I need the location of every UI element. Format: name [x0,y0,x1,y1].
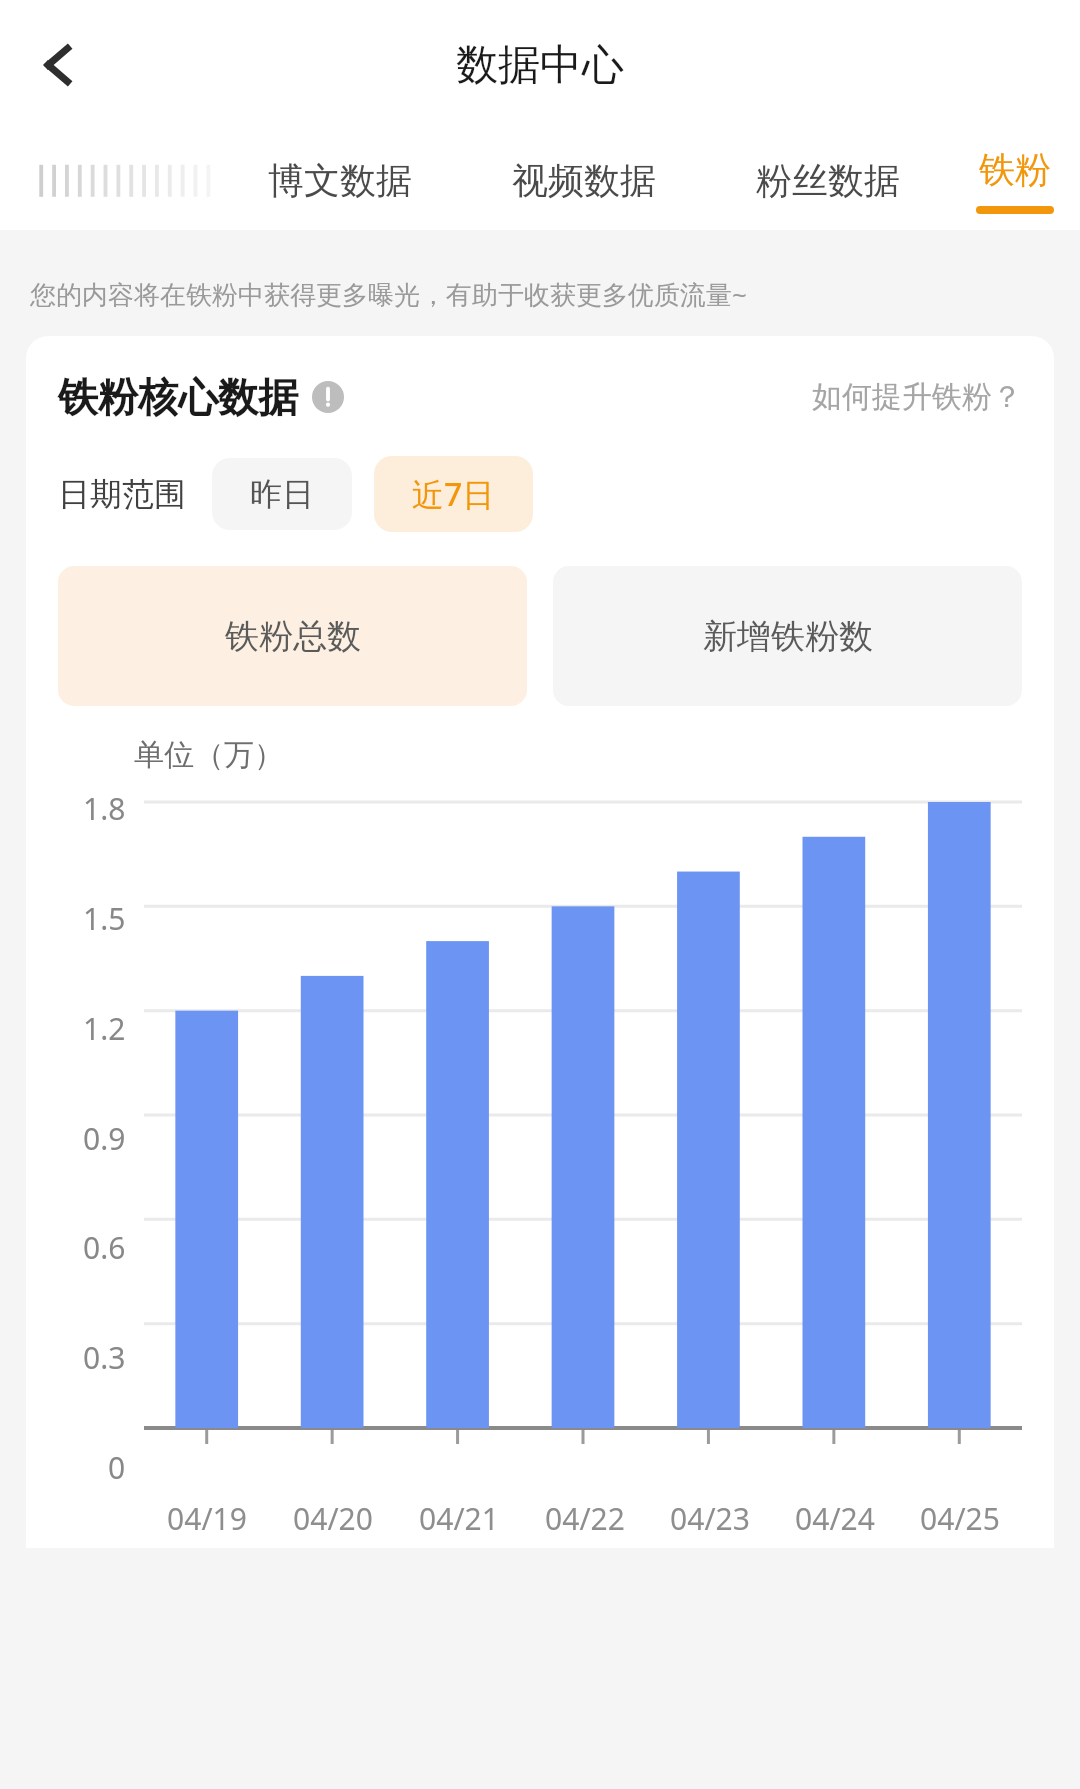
staticText: 铁粉核心数据 [58,372,298,422]
button[interactable]: 博文数据 [218,130,462,230]
staticText: 0 [108,1447,126,1488]
staticText: 粉丝数据 [756,158,900,203]
staticText: 1.8 [83,788,126,829]
staticText: 04/23 [670,1498,750,1539]
button[interactable]: 昨日 [212,458,352,530]
staticText: 0.6 [83,1227,126,1268]
button[interactable]: 说明 [310,379,346,415]
button[interactable]: 铁粉总数 [58,566,527,706]
staticText: 04/25 [920,1498,1000,1539]
staticText: 04/21 [419,1498,499,1539]
button[interactable]: 粉丝数据 [706,130,950,230]
button[interactable]: 近7日 [374,456,533,532]
staticText: 您的内容将在铁粉中获得更多曝光，有助于收获更多优质流量~ [30,276,747,312]
staticText: 昨日 [250,474,314,514]
staticText: 04/20 [293,1498,373,1539]
staticText: 0.9 [83,1118,126,1159]
button[interactable]: Back [14,17,110,113]
staticText: 单位（万） [134,736,284,774]
staticText: 04/24 [795,1498,875,1539]
staticText: 铁粉 [979,147,1051,192]
button[interactable]: 如何提升铁粉？ [812,378,1022,416]
staticText: 04/19 [167,1498,247,1539]
staticText: 0.3 [83,1337,126,1378]
staticText: 如何提升铁粉？ [812,378,1022,416]
button[interactable]: 上一个标签 [38,160,218,200]
staticText: 04/22 [545,1498,625,1539]
staticText: 数据中心 [456,39,624,92]
button[interactable]: 视频数据 [462,130,706,230]
staticText: 近7日 [412,472,495,516]
button[interactable]: 铁粉 [950,130,1080,230]
staticText: 1.2 [83,1008,126,1049]
button[interactable]: 新增铁粉数 [553,566,1022,706]
staticText: 日期范围 [58,474,186,514]
staticText: 1.5 [83,898,126,939]
staticText: 博文数据 [268,158,412,203]
staticText: 铁粉总数 [225,615,361,658]
staticText: 视频数据 [512,158,656,203]
staticText: 新增铁粉数 [703,615,873,658]
